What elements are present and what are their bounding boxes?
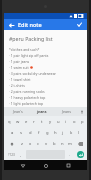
button[interactable]: p	[78, 116, 86, 127]
button[interactable]: u	[54, 116, 62, 127]
button[interactable]: Back	[18, 161, 27, 170]
staticText: n	[61, 141, 64, 147]
staticText: *clothes and such*	[9, 47, 40, 52]
button[interactable]: #peru Packing list	[4, 30, 87, 107]
staticText: .	[69, 152, 71, 157]
button[interactable]: i	[62, 116, 70, 127]
staticText: · 1 light polartech top	[9, 101, 44, 106]
button[interactable]: Backspace	[74, 138, 86, 149]
button[interactable]: k	[67, 127, 75, 138]
button[interactable]: g	[43, 127, 51, 138]
button[interactable]: j	[59, 127, 67, 138]
staticText: p	[81, 119, 84, 125]
staticText: i	[65, 119, 67, 125]
staticText: · 2 pairs running socks	[9, 89, 45, 94]
staticText: Jeans	[62, 109, 71, 114]
staticText: t	[41, 119, 43, 125]
button[interactable]: ?123	[5, 150, 17, 159]
staticText: s	[20, 130, 23, 136]
staticText: jeans	[37, 109, 47, 114]
button[interactable]: Jeans	[54, 107, 78, 116]
staticText: e	[25, 119, 28, 125]
staticText: j	[62, 130, 64, 136]
staticText: f	[38, 130, 40, 136]
button[interactable]: q	[5, 116, 14, 127]
button[interactable]: t	[38, 116, 46, 127]
button[interactable]: f	[35, 127, 43, 138]
button[interactable]: v	[42, 138, 50, 149]
button[interactable]: h	[51, 127, 59, 138]
button[interactable]: x	[26, 138, 34, 149]
staticText: u	[57, 119, 60, 125]
staticText: r	[33, 119, 35, 125]
button[interactable]: Jean's	[6, 107, 30, 116]
button[interactable]: n	[58, 138, 66, 149]
button[interactable]: Save note	[75, 20, 84, 29]
staticText: · 1 towel shirt	[9, 77, 31, 82]
staticText: o	[73, 119, 76, 125]
staticText: q	[8, 119, 11, 125]
staticText: v	[45, 141, 48, 147]
staticText: a	[11, 130, 14, 136]
button[interactable]: z	[18, 138, 26, 149]
staticText: l	[78, 130, 80, 136]
button[interactable]: r	[30, 116, 38, 127]
button[interactable]: Shift	[5, 138, 18, 149]
staticText: d	[29, 130, 32, 136]
staticText: Jean's	[13, 109, 23, 114]
button[interactable]: e	[22, 116, 30, 127]
button[interactable]: o	[70, 116, 78, 127]
staticText: g	[46, 130, 49, 136]
button[interactable]: a	[8, 127, 17, 138]
staticText: b	[53, 141, 56, 147]
staticText: h	[54, 130, 57, 136]
staticText: y	[49, 119, 52, 125]
button[interactable]: c	[34, 138, 42, 149]
staticText: k	[70, 130, 73, 136]
staticText: z	[21, 141, 23, 147]
button[interactable]: w	[14, 116, 22, 127]
staticText: · 2 t-shirts	[9, 83, 25, 88]
staticText: m	[68, 141, 72, 147]
button[interactable]: Home	[41, 161, 50, 170]
button[interactable]: Back	[7, 21, 15, 29]
button[interactable]: s	[17, 127, 26, 138]
button[interactable]: l	[75, 127, 83, 138]
button[interactable]: Recent apps	[64, 161, 73, 170]
button[interactable]: b	[50, 138, 58, 149]
button[interactable]: ,	[17, 150, 25, 159]
button[interactable]: y	[46, 116, 54, 127]
staticText: Edit note	[18, 21, 42, 28]
staticText: · 1 pair jeans	[9, 59, 30, 64]
button[interactable]: Enter	[77, 151, 84, 158]
staticText: · 3 pairs socks/dry underwear	[9, 71, 56, 76]
button[interactable]: m	[66, 138, 74, 149]
staticText: x	[29, 141, 32, 147]
staticText: · 1 swim suit	[9, 65, 29, 70]
staticText: c	[37, 141, 40, 147]
staticText: · 1 heavy polartech top	[9, 95, 46, 100]
button[interactable]: jeans	[30, 107, 54, 116]
button[interactable]: Voice input	[78, 107, 85, 116]
button[interactable]: d	[26, 127, 35, 138]
staticText: ?123	[8, 153, 15, 157]
staticText: #peru Packing list	[9, 35, 53, 42]
staticText: ,	[20, 152, 22, 157]
staticText: w	[16, 119, 20, 125]
staticText: · 1 pair light zip off pants	[9, 53, 49, 58]
